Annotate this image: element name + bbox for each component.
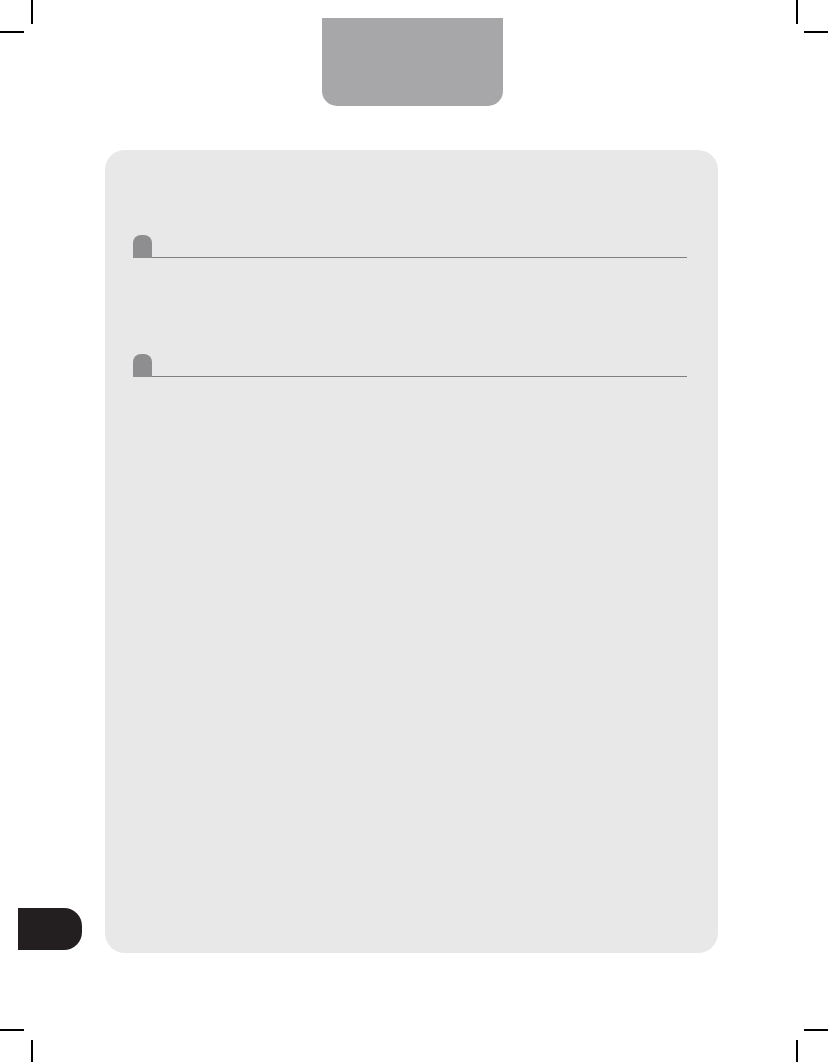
button[interactable]: Entry two bbox=[133, 354, 687, 377]
button[interactable]: Masthead bbox=[322, 18, 503, 106]
button[interactable]: Section tab bbox=[18, 908, 82, 950]
button[interactable]: Entry one bbox=[133, 235, 687, 258]
